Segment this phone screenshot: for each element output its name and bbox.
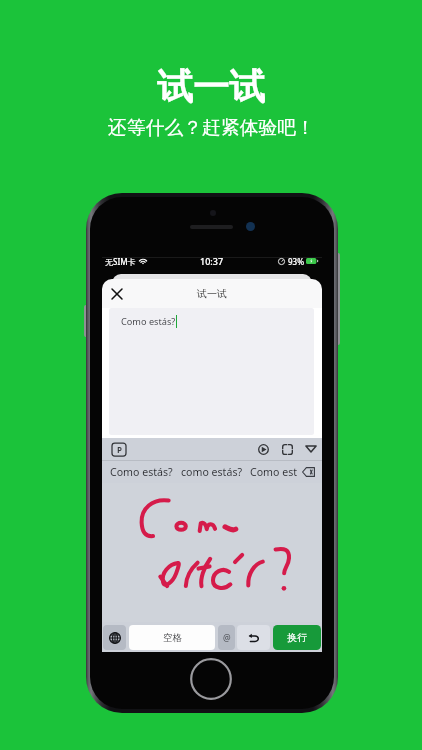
staticText: 还等什么？赶紧体验吧！ [108, 116, 315, 140]
button[interactable]: Close [108, 285, 126, 303]
staticText: 93% [288, 256, 304, 267]
button[interactable]: Delete [301, 465, 315, 479]
button[interactable]: Como est [250, 465, 298, 479]
button[interactable]: Full screen [279, 441, 295, 457]
staticText: P [117, 444, 122, 455]
button[interactable]: @ [218, 625, 235, 650]
button[interactable]: Home [190, 658, 232, 700]
button[interactable]: 空格 [129, 625, 215, 650]
staticText: Como estás? [121, 315, 176, 328]
staticText: 换行 [287, 631, 307, 644]
staticText: 无SIM卡 [105, 256, 136, 267]
button[interactable]: Como estás? [110, 465, 173, 479]
staticText: 10:37 [200, 255, 224, 267]
button[interactable]: Voice input [255, 441, 271, 457]
button[interactable]: Undo [237, 625, 270, 650]
button[interactable]: Switch language [103, 625, 126, 650]
button[interactable]: Input method [112, 443, 126, 456]
button[interactable]: 换行 [273, 625, 321, 650]
staticText: 试一试 [197, 287, 227, 300]
staticText: @ [223, 632, 231, 644]
button[interactable]: como estás? [181, 465, 243, 479]
staticText: 试一试 [157, 64, 265, 109]
staticText: 空格 [163, 632, 182, 644]
button[interactable]: Hide keyboard [303, 441, 319, 457]
